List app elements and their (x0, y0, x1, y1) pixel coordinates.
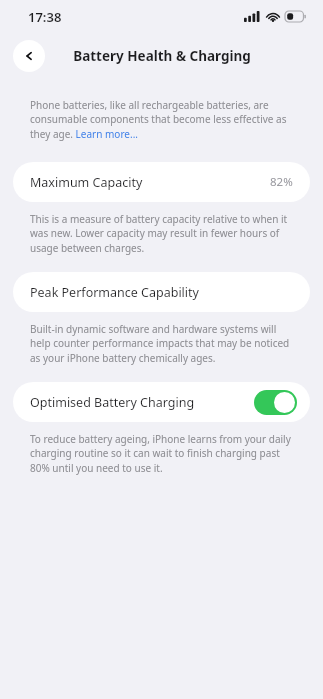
staticText: Optimised Battery Charging (30, 394, 195, 411)
button[interactable]: Optimised Battery Charging toggle (254, 390, 297, 415)
staticText: 17:38 (28, 8, 62, 26)
staticText: Maximum Capacity (30, 174, 143, 191)
button[interactable]: Peak Performance Capability (13, 272, 310, 312)
staticText: This is a measure of battery capacity re… (30, 212, 293, 255)
button[interactable]: Maximum Capacity (13, 162, 310, 202)
button[interactable]: Back (13, 40, 45, 72)
staticText: To reduce battery ageing, iPhone learns … (30, 432, 293, 475)
staticText: Battery Health & Charging (73, 47, 251, 65)
button[interactable]: Optimised Battery Charging (13, 382, 310, 422)
staticText: Peak Performance Capability (30, 284, 199, 301)
staticText: Phone batteries, like all rechargeable b… (30, 98, 293, 141)
staticText: Built-in dynamic software and hardware s… (30, 322, 293, 365)
staticText: 82% (270, 174, 293, 190)
